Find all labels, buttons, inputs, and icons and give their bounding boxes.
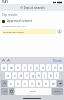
- staticText: z: [10, 82, 12, 86]
- button[interactable]: s: [12, 72, 17, 79]
- staticText: v: [31, 82, 33, 86]
- button[interactable]: e: [15, 64, 21, 71]
- button[interactable]: v: [29, 80, 35, 87]
- staticText: j: [44, 74, 45, 78]
- button[interactable]: d: [18, 72, 23, 79]
- button[interactable]: f: [24, 72, 29, 79]
- staticText: r: [24, 66, 26, 70]
- staticText: y: [36, 66, 38, 70]
- button[interactable]: z: [8, 80, 14, 87]
- staticText: Top results: [2, 13, 18, 17]
- staticText: Approved content: [7, 19, 33, 23]
- button[interactable]: o: [52, 64, 57, 71]
- button[interactable]: q: [1, 64, 7, 71]
- staticText: o: [54, 66, 56, 70]
- button[interactable]: m: [50, 80, 56, 87]
- staticText: n: [45, 82, 47, 86]
- button[interactable]: Emoji: [9, 88, 14, 95]
- button[interactable]: u: [40, 64, 45, 71]
- button[interactable]: c: [22, 80, 28, 87]
- button[interactable]: h: [36, 72, 41, 79]
- staticText: m: [52, 82, 55, 86]
- staticText: f: [26, 74, 28, 78]
- staticText: u: [42, 66, 44, 70]
- button[interactable]: p: [58, 64, 63, 71]
- button[interactable]: k: [48, 72, 53, 79]
- button[interactable]: Shift: [1, 80, 7, 87]
- staticText: a: [7, 74, 9, 78]
- button[interactable]: n: [43, 80, 49, 87]
- button[interactable]: search: [52, 88, 63, 95]
- button[interactable]: l: [54, 72, 59, 79]
- staticText: l: [56, 74, 57, 78]
- staticText: t: [30, 66, 32, 70]
- button[interactable]: Previous field: [2, 59, 5, 62]
- staticText: e: [17, 66, 19, 70]
- button[interactable]: b: [36, 80, 42, 87]
- button[interactable]: space: [15, 88, 51, 95]
- button[interactable]: 123: [1, 88, 8, 95]
- staticText: 9:41: [2, 0, 8, 4]
- staticText: Done: [53, 58, 62, 63]
- button[interactable]: i: [46, 64, 51, 71]
- staticText: d: [20, 74, 22, 78]
- staticText: highlighted result: [3, 30, 24, 33]
- staticText: x: [17, 82, 19, 86]
- staticText: k: [50, 74, 52, 78]
- staticText: search: [54, 90, 61, 93]
- staticText: space: [30, 90, 36, 93]
- staticText: h: [38, 74, 40, 78]
- button[interactable]: g: [30, 72, 35, 79]
- button[interactable]: j: [42, 72, 47, 79]
- staticText: i: [48, 66, 49, 70]
- staticText: Suggestions for you: [2, 24, 26, 27]
- button[interactable]: Backspace: [57, 80, 63, 87]
- button[interactable]: t: [28, 64, 33, 71]
- staticText: s: [14, 74, 16, 78]
- button[interactable]: r: [22, 64, 27, 71]
- button[interactable]: x: [15, 80, 21, 87]
- button[interactable]: y: [34, 64, 39, 71]
- staticText: p: [60, 66, 62, 70]
- staticText: 123: [3, 90, 7, 93]
- staticText: w: [10, 66, 13, 70]
- button[interactable]: Next field: [7, 59, 10, 62]
- button[interactable]: w: [8, 64, 14, 71]
- button[interactable]: Done: [51, 58, 64, 63]
- staticText: c: [24, 82, 26, 86]
- staticText: q: [3, 66, 5, 70]
- staticText: Input search: [24, 5, 45, 10]
- staticText: g: [32, 74, 34, 78]
- button[interactable]: a: [5, 72, 11, 79]
- staticText: b: [38, 82, 40, 86]
